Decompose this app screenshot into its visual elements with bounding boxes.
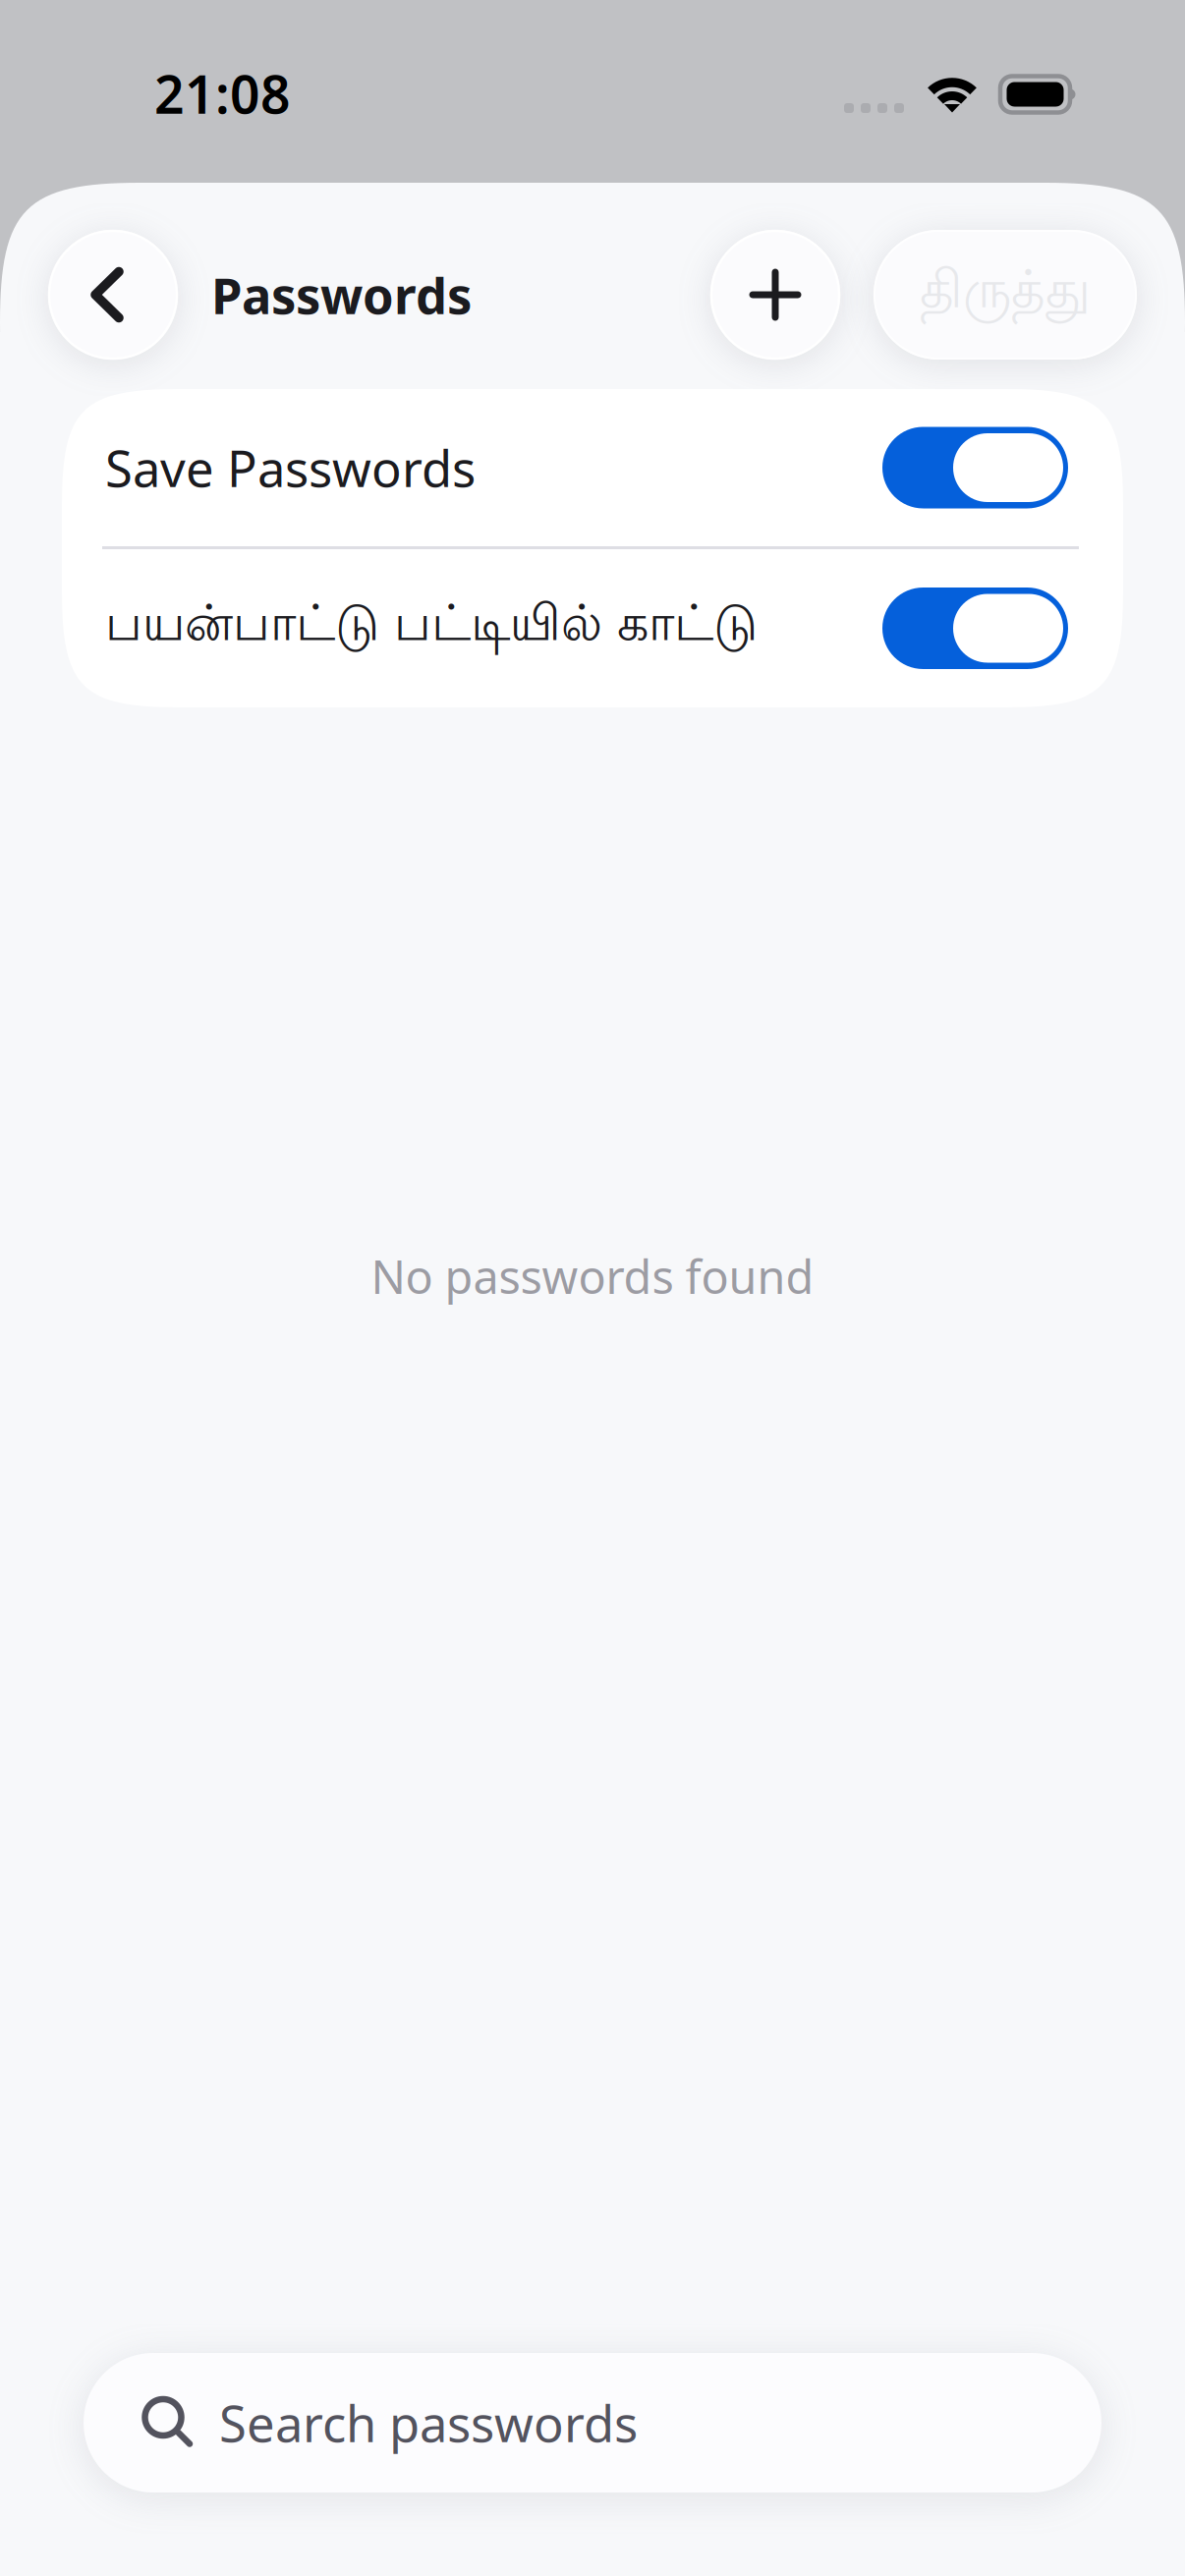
staticText: No passwords found [371,1246,814,1307]
button[interactable]: Add password [710,230,840,360]
staticText: பயன்பாட்டு பட்டியில் காட்டு [105,599,758,658]
button[interactable]: திருத்து [874,230,1137,360]
button[interactable]: Back [48,230,178,360]
staticText: 21:08 [154,59,291,128]
button[interactable]: Search passwords [84,2353,1101,2492]
staticText: Save Passwords [105,435,476,501]
staticText: Search passwords [219,2390,638,2456]
staticText: Passwords [211,262,472,328]
staticText: திருத்து [920,264,1091,326]
button[interactable]: பயன்பாட்டு பட்டியில் காட்டு [62,549,1123,707]
button[interactable]: Save Passwords [62,389,1123,546]
